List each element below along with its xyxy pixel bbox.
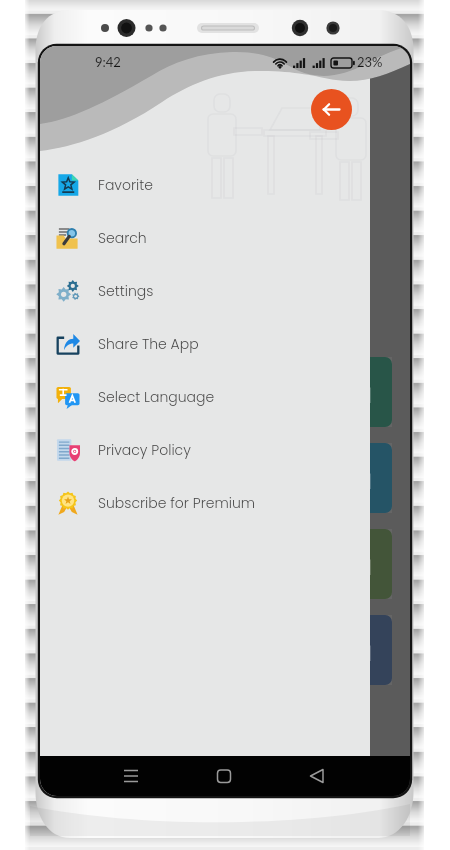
- staticText: ALL Files: [69, 382, 127, 403]
- button[interactable]: Favorite: [40, 158, 370, 211]
- button[interactable]: Share The App: [40, 317, 370, 370]
- button[interactable]: DOC Files: [232, 443, 392, 513]
- button[interactable]: PDF Files: [51, 443, 211, 513]
- button[interactable]: Subscribe for Premium: [40, 476, 370, 529]
- button[interactable]: CSV Files: [232, 529, 392, 599]
- button[interactable]: Search: [40, 211, 370, 264]
- button[interactable]: Back: [311, 89, 352, 130]
- staticText: Privacy Policy: [98, 440, 191, 460]
- button[interactable]: ALL Files: [51, 357, 211, 427]
- staticText: Select Language: [98, 387, 215, 407]
- staticText: Subscribe for Premium: [98, 493, 256, 513]
- staticText: Search: [98, 228, 147, 248]
- staticText: Favorite: [98, 175, 153, 195]
- button[interactable]: Privacy Policy: [40, 423, 370, 476]
- button[interactable]: XLS Files: [232, 357, 392, 427]
- staticText: 23%: [357, 54, 383, 70]
- staticText: Settings: [98, 281, 154, 301]
- button[interactable]: TXT Files: [232, 615, 392, 685]
- button[interactable]: Select Language: [40, 370, 370, 423]
- button[interactable]: Settings: [40, 264, 370, 317]
- staticText: 9:42: [95, 54, 121, 70]
- staticText: Share The App: [98, 334, 199, 354]
